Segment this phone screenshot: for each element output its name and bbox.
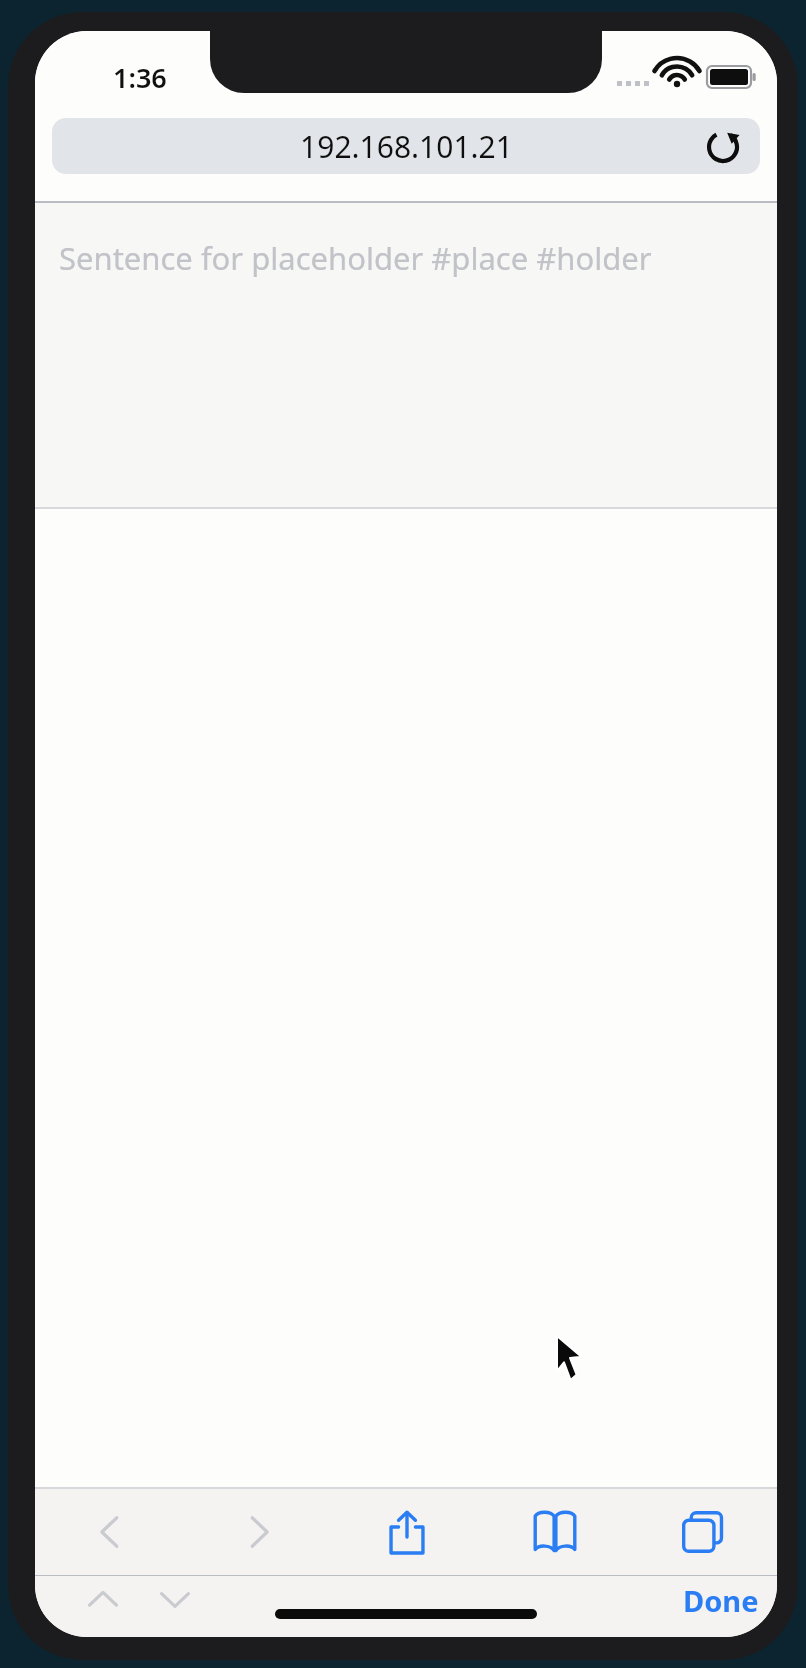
button[interactable]: Reload — [696, 119, 750, 173]
button[interactable]: Next field — [139, 1576, 211, 1637]
staticText: 1:36 — [113, 59, 167, 96]
staticText: 192.168.101.21 — [300, 126, 513, 167]
button[interactable]: Sentence for placeholder #place #holder — [35, 203, 777, 508]
button[interactable]: 192.168.101.21 — [52, 118, 760, 174]
staticText: Done — [683, 1581, 759, 1620]
button[interactable]: Bookmarks — [481, 1489, 629, 1575]
button[interactable]: Previous field — [67, 1576, 139, 1637]
button[interactable]: Share — [333, 1489, 481, 1575]
button[interactable]: Forward — [184, 1489, 333, 1575]
button[interactable]: Done — [683, 1572, 759, 1628]
staticText: Sentence for placeholder #place #holder — [59, 237, 652, 279]
button[interactable]: Tabs — [629, 1489, 777, 1575]
button[interactable]: Back — [35, 1489, 184, 1575]
